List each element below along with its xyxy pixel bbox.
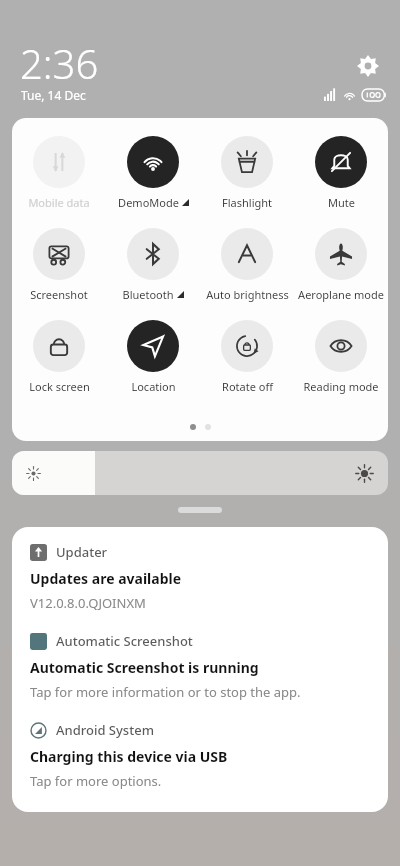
button[interactable]: Reading mode [294, 316, 388, 398]
button[interactable]: Lock screen [12, 316, 106, 398]
staticText: V12.0.8.0.QJOINXM [30, 594, 146, 612]
button[interactable]: Flashlight [200, 132, 294, 214]
button[interactable]: DemoMode [106, 132, 200, 214]
staticText: Auto brightness [206, 287, 289, 302]
button[interactable]: Updater [12, 543, 388, 612]
staticText: DemoMode [118, 195, 179, 210]
button[interactable]: Android System [12, 721, 388, 790]
staticText: Location [131, 379, 176, 394]
staticText: Updater [56, 543, 108, 561]
staticText: Tap for more options. [30, 772, 162, 790]
staticText: Aeroplane mode [298, 287, 384, 302]
staticText: Mobile data [28, 195, 90, 210]
button[interactable]: Bluetooth [106, 224, 200, 306]
staticText: Rotate off [222, 379, 273, 394]
staticText: Tue, 14 Dec [21, 87, 86, 103]
staticText: Reading mode [303, 379, 379, 394]
button[interactable]: Automatic Screenshot [12, 632, 388, 701]
button[interactable]: Screenshot [12, 224, 106, 306]
button[interactable]: Mute [294, 132, 388, 214]
staticText: Automatic Screenshot is running [30, 658, 259, 677]
staticText: Flashlight [222, 195, 272, 210]
button[interactable]: Mobile data [12, 132, 106, 214]
button[interactable]: Rotate off [200, 316, 294, 398]
button[interactable]: Brightness [12, 451, 388, 495]
button[interactable]: Aeroplane mode [294, 224, 388, 306]
staticText: Mute [328, 195, 355, 210]
staticText: Automatic Screenshot [56, 632, 193, 650]
staticText: Charging this device via USB [30, 747, 228, 766]
staticText: Lock screen [29, 379, 90, 394]
staticText: Bluetooth [122, 287, 174, 302]
button[interactable]: Auto brightness [200, 224, 294, 306]
staticText: Screenshot [30, 287, 88, 302]
staticText: Android System [56, 721, 154, 739]
staticText: 2:36 [20, 36, 99, 90]
staticText: Updates are available [30, 569, 182, 588]
button[interactable]: Location [106, 316, 200, 398]
staticText: Tap for more information or to stop the … [30, 683, 301, 701]
button[interactable]: Settings [348, 46, 388, 86]
